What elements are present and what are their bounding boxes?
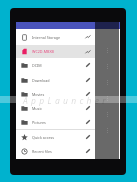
button[interactable]: Download xyxy=(16,73,95,87)
button[interactable]: Music xyxy=(16,101,95,115)
staticText: Download xyxy=(32,78,50,83)
button[interactable]: DCIM xyxy=(16,58,95,72)
staticText: WC2D-MBXB xyxy=(32,49,55,54)
button[interactable]: Pictures xyxy=(16,115,95,129)
staticText: Pictures xyxy=(32,120,46,125)
button[interactable]: Quick access xyxy=(16,130,95,144)
staticText: Music xyxy=(32,106,43,111)
button[interactable]: WC2D-MBXB xyxy=(16,45,95,58)
staticText: Recent files xyxy=(32,149,52,154)
staticText: DCIM xyxy=(32,63,42,68)
staticText: Quick access xyxy=(32,135,55,140)
staticText: Movies xyxy=(32,92,45,97)
button[interactable]: Internal Storage xyxy=(16,30,95,44)
staticText: Internal Storage xyxy=(32,35,61,40)
button[interactable]: Movies xyxy=(16,87,95,101)
button[interactable]: Recent files xyxy=(16,144,95,158)
staticText: AppLauncher xyxy=(23,95,110,107)
